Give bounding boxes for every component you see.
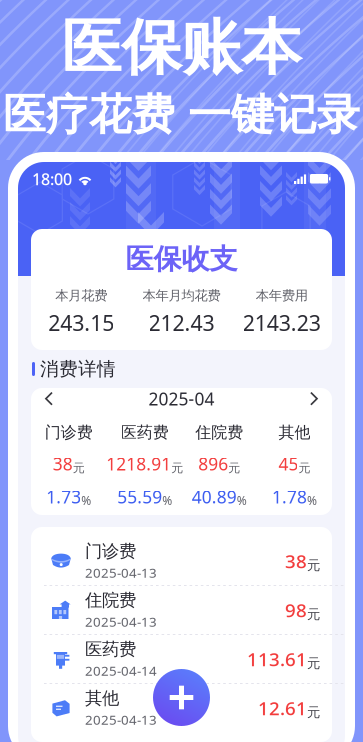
- staticText: 38: [285, 549, 307, 573]
- staticText: 2025-04-14: [85, 662, 157, 679]
- staticText: 医保收支: [125, 242, 237, 276]
- staticText: 113.61: [247, 647, 307, 671]
- staticText: 元: [298, 461, 310, 475]
- staticText: 18:00: [32, 168, 72, 190]
- staticText: 896: [198, 452, 228, 475]
- staticText: 本月花费: [55, 287, 107, 304]
- staticText: 38: [53, 452, 73, 475]
- staticText: 元: [307, 606, 320, 622]
- staticText: 55.59: [117, 485, 162, 508]
- staticText: 门诊费: [85, 540, 136, 562]
- staticText: 元: [228, 461, 240, 475]
- staticText: 医疗花费 一键记录: [3, 89, 360, 141]
- staticText: 2025-04-13: [85, 613, 157, 630]
- button[interactable]: Add record: [153, 669, 210, 726]
- staticText: 医保账本: [61, 11, 301, 85]
- staticText: 2143.23: [243, 309, 321, 337]
- staticText: 元: [73, 461, 85, 475]
- staticText: 1.78: [272, 485, 307, 508]
- staticText: 元: [307, 704, 320, 720]
- staticText: %: [307, 492, 317, 508]
- staticText: 医药费: [85, 638, 136, 660]
- staticText: 消费详情: [40, 357, 116, 380]
- button[interactable]: Next month: [301, 383, 327, 415]
- staticText: 212.43: [148, 309, 214, 337]
- staticText: 1218.91: [106, 452, 171, 475]
- staticText: 2025-04: [148, 387, 214, 410]
- staticText: 其他: [278, 423, 310, 442]
- staticText: %: [237, 492, 247, 508]
- button[interactable]: 其他: [31, 684, 332, 732]
- staticText: 243.15: [48, 309, 114, 337]
- button[interactable]: 医药费: [31, 635, 332, 683]
- staticText: 2025-04-13: [85, 711, 157, 728]
- staticText: 2025-04-13: [85, 564, 157, 581]
- staticText: 住院费: [195, 423, 243, 442]
- staticText: 住院费: [85, 589, 136, 611]
- staticText: 医药费: [121, 423, 169, 442]
- button[interactable]: 住院费: [31, 586, 332, 634]
- staticText: 1.73: [46, 485, 81, 508]
- staticText: %: [81, 492, 91, 508]
- staticText: 本年月均花费: [142, 287, 220, 304]
- staticText: 12.61: [258, 696, 307, 720]
- staticText: 其他: [85, 687, 119, 709]
- staticText: 元: [307, 655, 320, 671]
- staticText: 45: [278, 452, 298, 475]
- staticText: 本年费用: [256, 287, 308, 304]
- staticText: 40.89: [192, 485, 237, 508]
- staticText: 门诊费: [45, 423, 93, 442]
- button[interactable]: Previous month: [36, 383, 62, 415]
- staticText: 98: [285, 598, 307, 622]
- button[interactable]: 门诊费: [31, 537, 332, 585]
- staticText: 元: [307, 557, 320, 573]
- staticText: %: [162, 492, 172, 508]
- staticText: 元: [171, 461, 183, 475]
